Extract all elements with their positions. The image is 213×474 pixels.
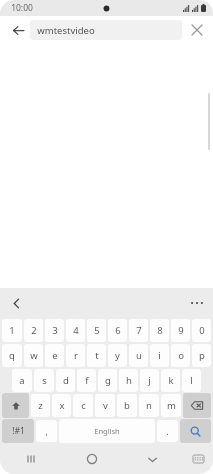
button[interactable]: , [36,420,57,442]
button[interactable]: l [182,369,201,392]
staticText: 6 [115,324,121,337]
button[interactable]: . [157,420,178,442]
button[interactable]: o [171,344,190,367]
button[interactable]: 9 [171,319,190,342]
staticText: !#1 [12,425,25,437]
staticText: 10:00 [11,2,33,14]
button[interactable]: d [56,369,75,392]
button[interactable]: k [161,369,180,392]
staticText: v [103,399,108,412]
button[interactable]: Hide keyboard [122,444,183,474]
button[interactable]: 4 [66,319,85,342]
staticText: , [45,426,48,437]
button[interactable]: u [129,344,148,367]
staticText: b [124,399,130,412]
button[interactable]: g [98,369,117,392]
staticText: k [168,374,174,387]
button[interactable]: !#1 [2,419,34,443]
button[interactable]: q [2,344,22,367]
staticText: o [178,349,184,362]
staticText: l [190,374,193,387]
button[interactable]: More options [186,292,208,314]
staticText: s [42,374,47,387]
staticText: 3 [52,324,58,337]
staticText: u [136,349,142,362]
button[interactable]: a [12,369,32,392]
staticText: p [199,349,205,362]
button[interactable]: 3 [45,319,64,342]
button[interactable]: Home [61,444,122,474]
button[interactable]: Previous [5,292,27,314]
button[interactable]: f [77,369,96,392]
staticText: English [94,426,120,436]
button[interactable]: 7 [129,319,148,342]
staticText: c [81,399,86,412]
button[interactable]: y [108,344,127,367]
button[interactable]: 8 [150,319,169,342]
staticText: 9 [178,324,184,337]
staticText: z [38,399,43,412]
button[interactable]: Back [7,19,29,41]
staticText: q [9,349,15,362]
staticText: j [148,374,151,387]
button[interactable]: v [95,394,115,417]
button[interactable]: 6 [108,319,127,342]
button[interactable]: English [59,419,155,443]
button[interactable]: Search [180,419,211,443]
button[interactable]: Clear [186,19,208,41]
button[interactable]: n [139,394,159,417]
staticText: w [30,349,38,362]
staticText: 1 [9,324,15,337]
button[interactable]: c [73,394,93,417]
staticText: y [115,349,120,362]
staticText: m [167,399,176,412]
staticText: i [158,349,161,362]
button[interactable]: e [45,344,64,367]
button[interactable]: 0 [192,319,211,342]
button[interactable]: x [52,394,71,417]
staticText: wmtestvideo [37,24,95,37]
button[interactable]: i [150,344,169,367]
button[interactable]: r [66,344,85,367]
staticText: 5 [94,324,100,337]
button[interactable]: Keyboard [183,444,213,474]
staticText: e [52,349,58,362]
staticText: f [85,374,89,387]
staticText: t [95,349,99,362]
button[interactable]: 2 [24,319,43,342]
button[interactable]: b [117,394,137,417]
staticText: . [166,426,169,437]
staticText: 4 [73,324,79,337]
staticText: x [59,399,65,412]
button[interactable]: h [119,369,138,392]
staticText: g [105,374,111,387]
button[interactable]: Recents [0,444,61,474]
button[interactable]: Backspace [183,393,211,418]
staticText: 7 [136,324,142,337]
button[interactable]: s [34,369,54,392]
staticText: d [63,374,69,387]
button[interactable]: m [161,394,181,417]
button[interactable]: 1 [2,319,22,342]
button[interactable]: z [31,394,50,417]
staticText: n [146,399,152,412]
staticText: a [19,374,25,387]
staticText: 8 [157,324,163,337]
button[interactable]: p [192,344,211,367]
button[interactable]: t [87,344,106,367]
button[interactable]: j [140,369,159,392]
button[interactable]: wmtestvideo [30,20,182,40]
staticText: 2 [31,324,37,337]
button[interactable]: 5 [87,319,106,342]
button[interactable]: w [24,344,43,367]
staticText: r [74,349,78,362]
staticText: 0 [199,324,205,337]
button[interactable]: Shift [2,393,29,418]
staticText: h [126,374,132,387]
